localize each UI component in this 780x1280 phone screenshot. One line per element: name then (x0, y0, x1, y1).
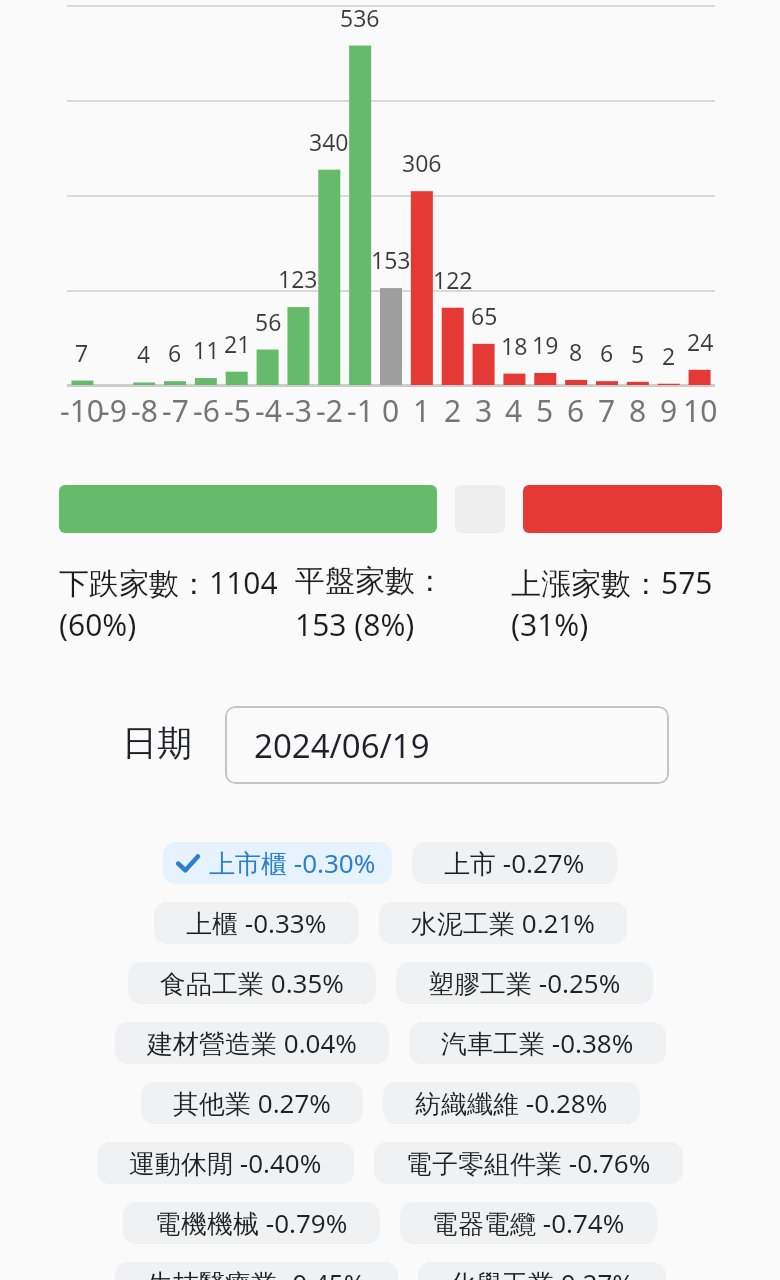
button[interactable]: 上市 -0.27% (412, 842, 617, 884)
button[interactable]: 塑膠工業 -0.25% (396, 962, 653, 1004)
button[interactable]: 建材營造業 0.04% (115, 1022, 389, 1064)
button[interactable]: 電子零組件業 -0.76% (374, 1142, 683, 1184)
staticText: 10 (683, 390, 718, 431)
staticText: 2 (444, 390, 462, 431)
staticText: 5 (631, 338, 645, 369)
staticText: -6 (193, 390, 220, 431)
staticText: 紡織纖維 -0.28% (415, 1085, 608, 1121)
staticText: -7 (162, 390, 189, 431)
button[interactable]: 電機機械 -0.79% (123, 1202, 380, 1244)
staticText: -3 (285, 390, 312, 431)
staticText: 6 (567, 390, 585, 431)
button[interactable]: 其他業 0.27% (141, 1082, 363, 1124)
staticText: 65 (471, 300, 498, 331)
staticText: 電器電纜 -0.74% (432, 1205, 625, 1241)
staticText: 電機機械 -0.79% (155, 1205, 348, 1241)
button[interactable]: 紡織纖維 -0.28% (383, 1082, 640, 1124)
button[interactable]: 2024/06/19 (225, 706, 669, 784)
staticText: 0 (382, 390, 400, 431)
staticText: 8 (569, 336, 583, 367)
staticText: 8 (629, 390, 647, 431)
staticText: -4 (255, 390, 282, 431)
staticText: 340 (309, 126, 349, 157)
staticText: (60%) (59, 604, 137, 645)
staticText: 上市櫃 -0.30% (209, 845, 376, 881)
staticText: 水泥工業 0.21% (411, 905, 595, 941)
staticText: 6 (600, 337, 614, 368)
button[interactable]: 運動休閒 -0.40% (97, 1142, 354, 1184)
staticText: -10 (60, 390, 104, 431)
staticText: 56 (255, 306, 282, 337)
button[interactable]: 食品工業 0.35% (128, 962, 376, 1004)
button[interactable]: 上櫃 -0.33% (154, 902, 359, 944)
staticText: -2 (316, 390, 343, 431)
staticText: 306 (402, 147, 442, 178)
staticText: 上櫃 -0.33% (186, 905, 327, 941)
staticText: 生技醫療業 -0.45% (147, 1265, 366, 1280)
staticText: 2 (662, 340, 676, 371)
staticText: 建材營造業 0.04% (147, 1025, 357, 1061)
staticText: 1 (413, 390, 431, 431)
staticText: 153 (371, 244, 411, 275)
staticText: 其他業 0.27% (173, 1085, 331, 1121)
staticText: 4 (505, 390, 523, 431)
staticText: 塑膠工業 -0.25% (428, 965, 621, 1001)
staticText: 153 (8%) (295, 604, 415, 645)
staticText: 上市 -0.27% (444, 845, 585, 881)
staticText: 4 (137, 338, 151, 369)
staticText: 11 (193, 334, 220, 365)
staticText: 7 (75, 337, 89, 368)
staticText: (31%) (511, 604, 589, 645)
staticText: -8 (131, 390, 158, 431)
button[interactable]: 汽車工業 -0.38% (409, 1022, 666, 1064)
staticText: -9 (100, 390, 127, 431)
button[interactable]: 化學工業 0.27% (418, 1262, 666, 1280)
staticText: 化學工業 0.27% (450, 1265, 634, 1280)
staticText: 2024/06/19 (254, 723, 430, 768)
staticText: -5 (224, 390, 251, 431)
staticText: 食品工業 0.35% (160, 965, 344, 1001)
button[interactable]: 上市櫃 -0.30% (163, 842, 392, 884)
staticText: 汽車工業 -0.38% (441, 1025, 634, 1061)
staticText: 6 (168, 337, 182, 368)
staticText: -1 (347, 390, 374, 431)
button[interactable]: 電器電纜 -0.74% (400, 1202, 657, 1244)
staticText: 電子零組件業 -0.76% (406, 1145, 651, 1181)
staticText: 18 (501, 330, 528, 361)
staticText: 運動休閒 -0.40% (129, 1145, 322, 1181)
staticText: 上漲家數：575 (511, 562, 713, 603)
staticText: 3 (475, 390, 493, 431)
staticText: 平盤家數： (295, 562, 445, 600)
button[interactable]: 水泥工業 0.21% (379, 902, 627, 944)
staticText: 下跌家數：1104 (59, 562, 278, 603)
staticText: 21 (224, 328, 251, 359)
staticText: 日期 (122, 721, 192, 765)
staticText: 7 (598, 390, 616, 431)
button[interactable]: 生技醫療業 -0.45% (115, 1262, 398, 1280)
staticText: 9 (660, 390, 678, 431)
staticText: 122 (433, 264, 473, 295)
staticText: 123 (278, 263, 318, 294)
staticText: 5 (536, 390, 554, 431)
staticText: 536 (340, 2, 380, 33)
staticText: 24 (687, 326, 714, 357)
staticText: 19 (532, 329, 559, 360)
